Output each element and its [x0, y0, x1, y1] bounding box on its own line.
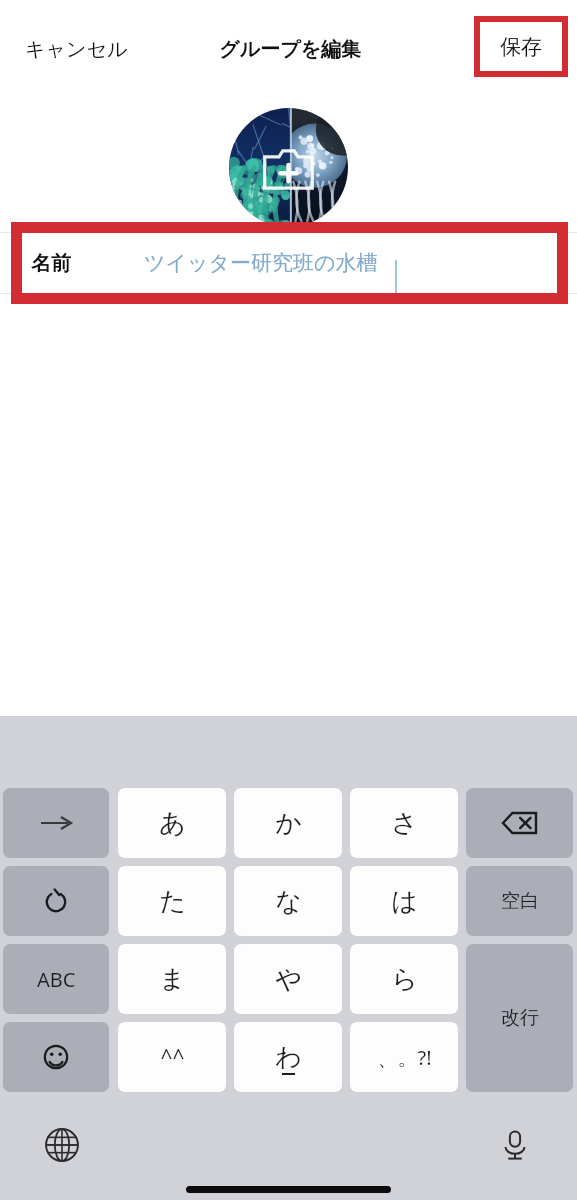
staticText: ら: [391, 963, 418, 996]
button[interactable]: 空白: [466, 866, 573, 936]
button[interactable]: 保存: [474, 16, 568, 77]
button[interactable]: さ: [350, 788, 458, 858]
staticText: な: [275, 885, 302, 918]
staticText: さ: [391, 807, 418, 840]
button[interactable]: 名前: [22, 233, 557, 293]
staticText: 保存: [500, 34, 542, 60]
button[interactable]: 絵文字: [3, 1022, 109, 1092]
button[interactable]: 戻す: [3, 866, 109, 936]
button[interactable]: 改行: [466, 944, 573, 1092]
staticText: ABC: [37, 966, 76, 993]
button[interactable]: は: [350, 866, 458, 936]
button[interactable]: ^^: [118, 1022, 226, 1092]
button[interactable]: あ: [118, 788, 226, 858]
staticText: あ: [159, 807, 186, 840]
button[interactable]: キーボードを切り替え: [32, 1115, 92, 1175]
button[interactable]: な: [234, 866, 342, 936]
staticText: 改行: [501, 1006, 539, 1030]
button[interactable]: ま: [118, 944, 226, 1014]
button[interactable]: 音声入力: [485, 1115, 545, 1175]
button[interactable]: ら: [350, 944, 458, 1014]
staticText: た: [159, 885, 186, 918]
staticText: ツイッター研究班の水槽: [144, 250, 378, 276]
button[interactable]: ABC: [3, 944, 109, 1014]
staticText: 空白: [501, 889, 539, 913]
button[interactable]: か: [234, 788, 342, 858]
staticText: ^^: [160, 1043, 185, 1072]
button[interactable]: 、。?!: [350, 1022, 458, 1092]
staticText: 、。?!: [377, 1044, 432, 1071]
button[interactable]: や: [234, 944, 342, 1014]
staticText: は: [391, 885, 418, 918]
button[interactable]: グループ画像を変更: [229, 108, 348, 227]
button[interactable]: た: [118, 866, 226, 936]
staticText: や: [275, 963, 302, 996]
staticText: ま: [159, 963, 186, 996]
button[interactable]: 削除: [466, 788, 573, 858]
staticText: キャンセル: [25, 37, 128, 62]
button[interactable]: キャンセル: [25, 30, 155, 68]
button[interactable]: わ: [234, 1022, 342, 1092]
staticText: 名前: [31, 251, 71, 276]
staticText: か: [275, 807, 302, 840]
staticText: グループを編集: [219, 37, 361, 62]
button[interactable]: 次の候補: [3, 788, 109, 858]
staticText: わ: [275, 1041, 302, 1074]
